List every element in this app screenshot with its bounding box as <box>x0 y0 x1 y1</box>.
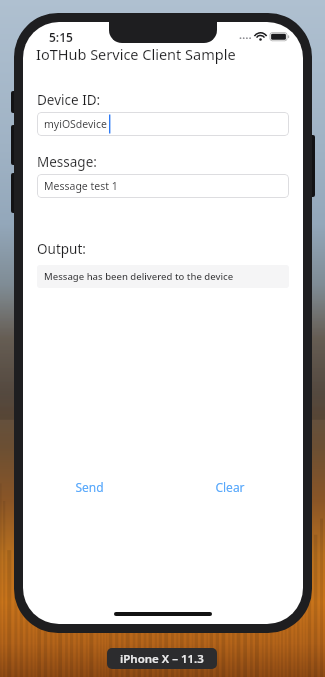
staticText: Message has been delivered to the device <box>44 270 234 283</box>
staticText: Output: <box>37 240 86 258</box>
button[interactable]: myiOSdevice <box>37 112 289 136</box>
other: Status icons <box>239 31 291 43</box>
staticText: Device ID: <box>37 91 101 109</box>
staticText: iPhone X – 11.3 <box>120 651 204 667</box>
staticText: myiOSdevice <box>44 117 108 131</box>
button[interactable]: Message test 1 <box>37 174 289 198</box>
button[interactable]: Clear <box>206 476 254 498</box>
staticText: Message: <box>37 153 97 171</box>
staticText: Clear <box>215 479 245 495</box>
staticText: 5:15 <box>49 29 73 45</box>
staticText: Message test 1 <box>44 179 118 193</box>
staticText: IoTHub Service Client Sample <box>36 44 236 64</box>
staticText: Send <box>75 479 104 495</box>
button[interactable]: Send <box>65 476 113 498</box>
